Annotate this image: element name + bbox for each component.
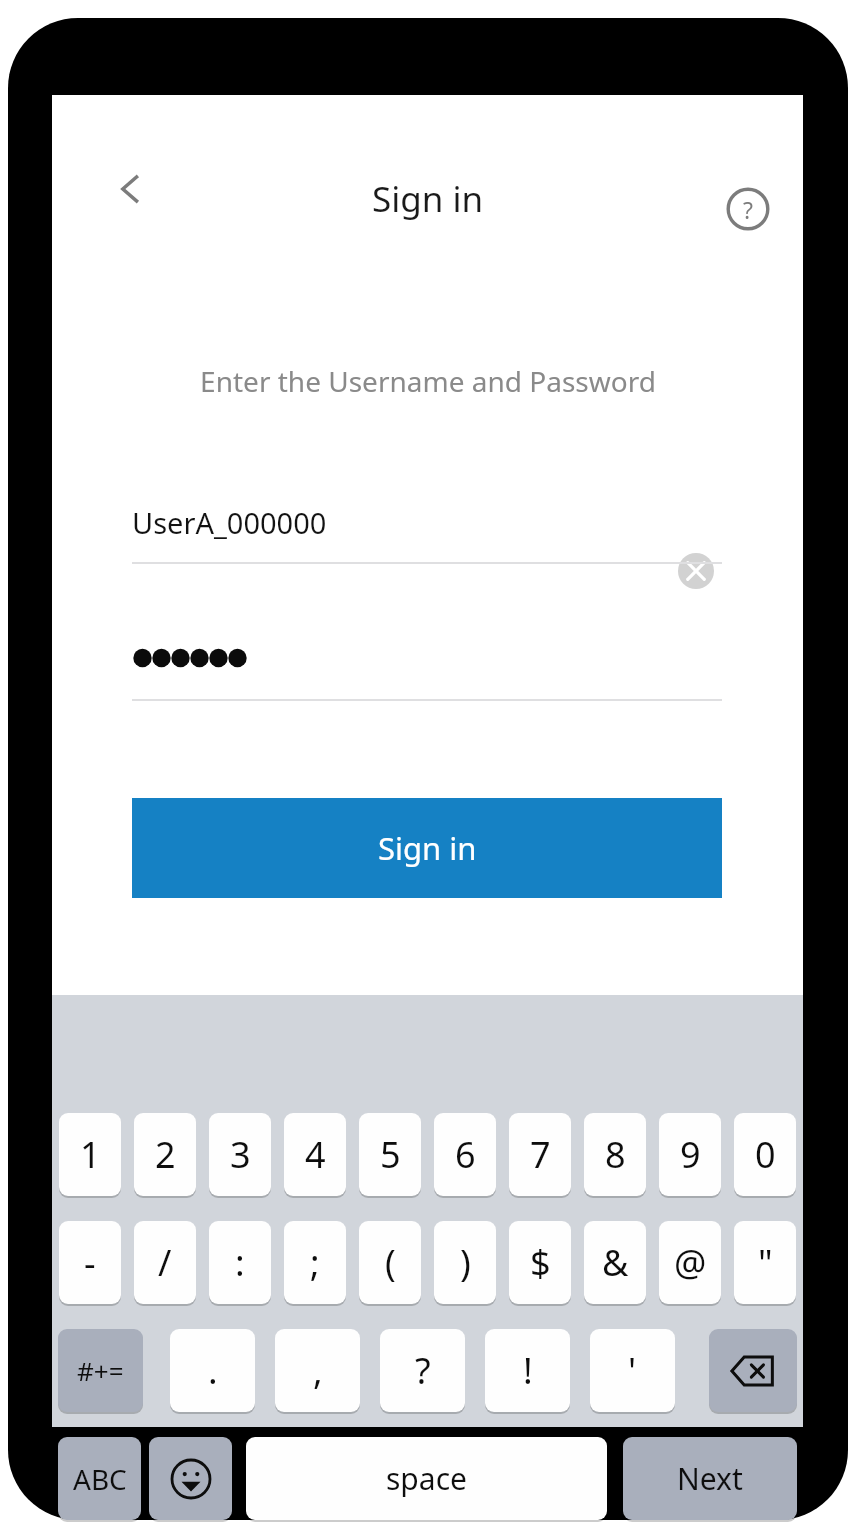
staticText: . (208, 1346, 218, 1395)
button[interactable]: Help (722, 183, 774, 235)
button[interactable]: " (734, 1221, 796, 1304)
button[interactable]: Sign in (132, 798, 722, 898)
staticText: @ (674, 1238, 707, 1287)
button[interactable]: 1 (59, 1113, 121, 1196)
staticText: , (313, 1346, 323, 1395)
staticText: Enter the Username and Password (200, 362, 656, 400)
button[interactable]: Back (103, 162, 157, 216)
staticText: ! (523, 1346, 533, 1395)
button[interactable]: 4 (284, 1113, 346, 1196)
staticText: ( (385, 1238, 396, 1287)
staticText: ' (628, 1346, 637, 1395)
staticText: 9 (680, 1130, 701, 1179)
button[interactable]: 2 (134, 1113, 196, 1196)
staticText: ) (460, 1238, 471, 1287)
button[interactable]: $ (509, 1221, 571, 1304)
staticText: 3 (230, 1130, 251, 1179)
staticText: space (386, 1458, 467, 1499)
staticText: 8 (605, 1130, 626, 1179)
button[interactable]: : (209, 1221, 271, 1304)
staticText: / (158, 1238, 172, 1287)
staticText: - (84, 1238, 96, 1287)
button[interactable]: ' (590, 1329, 675, 1412)
button[interactable]: ABC (58, 1437, 141, 1520)
staticText: $ (530, 1238, 551, 1287)
button[interactable]: space (246, 1437, 607, 1520)
button[interactable]: Next (623, 1437, 797, 1520)
button[interactable]: - (59, 1221, 121, 1304)
staticText: & (602, 1238, 629, 1287)
button[interactable]: & (584, 1221, 646, 1304)
button[interactable]: 5 (359, 1113, 421, 1196)
staticText: " (758, 1238, 773, 1287)
button[interactable]: Backspace (709, 1329, 797, 1412)
button[interactable]: / (134, 1221, 196, 1304)
staticText: ? (415, 1346, 431, 1395)
staticText: Sign in (372, 175, 484, 223)
button[interactable]: 7 (509, 1113, 571, 1196)
button[interactable]: 9 (659, 1113, 721, 1196)
button[interactable]: ; (284, 1221, 346, 1304)
button[interactable]: ? (380, 1329, 465, 1412)
staticText: Sign in (378, 827, 477, 869)
staticText: 4 (305, 1130, 326, 1179)
staticText: : (235, 1238, 245, 1287)
staticText: UserA_000000 (132, 503, 327, 542)
staticText: 5 (380, 1130, 401, 1179)
staticText: ? (743, 194, 753, 225)
button[interactable]: Emoji (149, 1437, 232, 1520)
button[interactable]: 0 (734, 1113, 796, 1196)
staticText: ABC (73, 1460, 127, 1498)
staticText: ; (310, 1238, 320, 1287)
button[interactable]: 8 (584, 1113, 646, 1196)
button[interactable]: ) (434, 1221, 496, 1304)
staticText: 0 (755, 1130, 776, 1179)
button[interactable]: #+= (58, 1329, 143, 1412)
button[interactable]: @ (659, 1221, 721, 1304)
staticText: #+= (77, 1353, 124, 1388)
button[interactable]: . (170, 1329, 255, 1412)
button[interactable]: Clear username (669, 544, 723, 598)
button[interactable]: , (275, 1329, 360, 1412)
button[interactable]: 6 (434, 1113, 496, 1196)
staticText: Next (677, 1458, 743, 1499)
staticText: 7 (530, 1130, 551, 1179)
staticText: 1 (80, 1130, 101, 1179)
button[interactable]: 3 (209, 1113, 271, 1196)
staticText: 6 (455, 1130, 476, 1179)
staticText: 2 (155, 1130, 176, 1179)
button[interactable]: ( (359, 1221, 421, 1304)
button[interactable]: ! (485, 1329, 570, 1412)
